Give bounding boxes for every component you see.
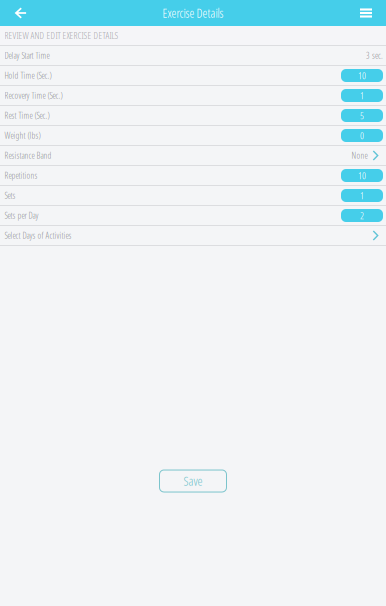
button[interactable]: Menu <box>346 0 386 26</box>
staticText: Exercise Details <box>162 5 223 21</box>
button[interactable]: Rest Time (Sec.) <box>0 106 386 126</box>
staticText: 5 <box>360 109 364 122</box>
staticText: Delay Start Time <box>4 50 49 61</box>
staticText: 10 <box>358 69 366 82</box>
staticText: Select Days of Activities <box>4 230 71 241</box>
staticText: Resistance Band <box>4 150 51 161</box>
button[interactable]: Select Days of Activities <box>0 226 386 246</box>
staticText: 2 <box>360 209 364 222</box>
staticText: Hold Time (Sec.) <box>4 70 51 81</box>
staticText: REVIEW AND EDIT EXERCISE DETAILS <box>4 29 118 42</box>
staticText: Weight (lbs) <box>4 130 40 141</box>
button[interactable]: Delay Start Time <box>0 46 386 66</box>
staticText: None <box>351 150 367 161</box>
staticText: Sets <box>4 190 15 201</box>
staticText: Rest Time (Sec.) <box>4 110 49 121</box>
button[interactable]: Weight (lbs) <box>0 126 386 146</box>
button[interactable]: Recovery Time (Sec.) <box>0 86 386 106</box>
button[interactable]: Save <box>159 470 226 492</box>
button[interactable]: Repetitions <box>0 166 386 186</box>
staticText: Recovery Time (Sec.) <box>4 90 62 101</box>
staticText: 3 sec. <box>366 50 383 61</box>
button[interactable]: Sets <box>0 186 386 206</box>
staticText: 1 <box>360 89 364 102</box>
staticText: 1 <box>360 189 364 202</box>
staticText: Save <box>183 472 202 490</box>
staticText: 0 <box>360 129 364 142</box>
staticText: 10 <box>358 169 366 182</box>
button[interactable]: Hold Time (Sec.) <box>0 66 386 86</box>
button[interactable]: Sets per Day <box>0 206 386 226</box>
button[interactable]: Resistance Band <box>0 146 386 166</box>
staticText: Sets per Day <box>4 210 38 221</box>
button[interactable]: Back <box>0 0 42 26</box>
staticText: Repetitions <box>4 170 37 181</box>
